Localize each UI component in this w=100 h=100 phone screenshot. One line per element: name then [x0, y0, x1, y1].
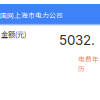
staticText: 电费年历 — [78, 54, 99, 73]
staticText: 金额(元) — [1, 29, 26, 39]
staticText: 5032. — [59, 32, 95, 48]
staticText: 国网上海市电力公司 — [0, 10, 63, 20]
